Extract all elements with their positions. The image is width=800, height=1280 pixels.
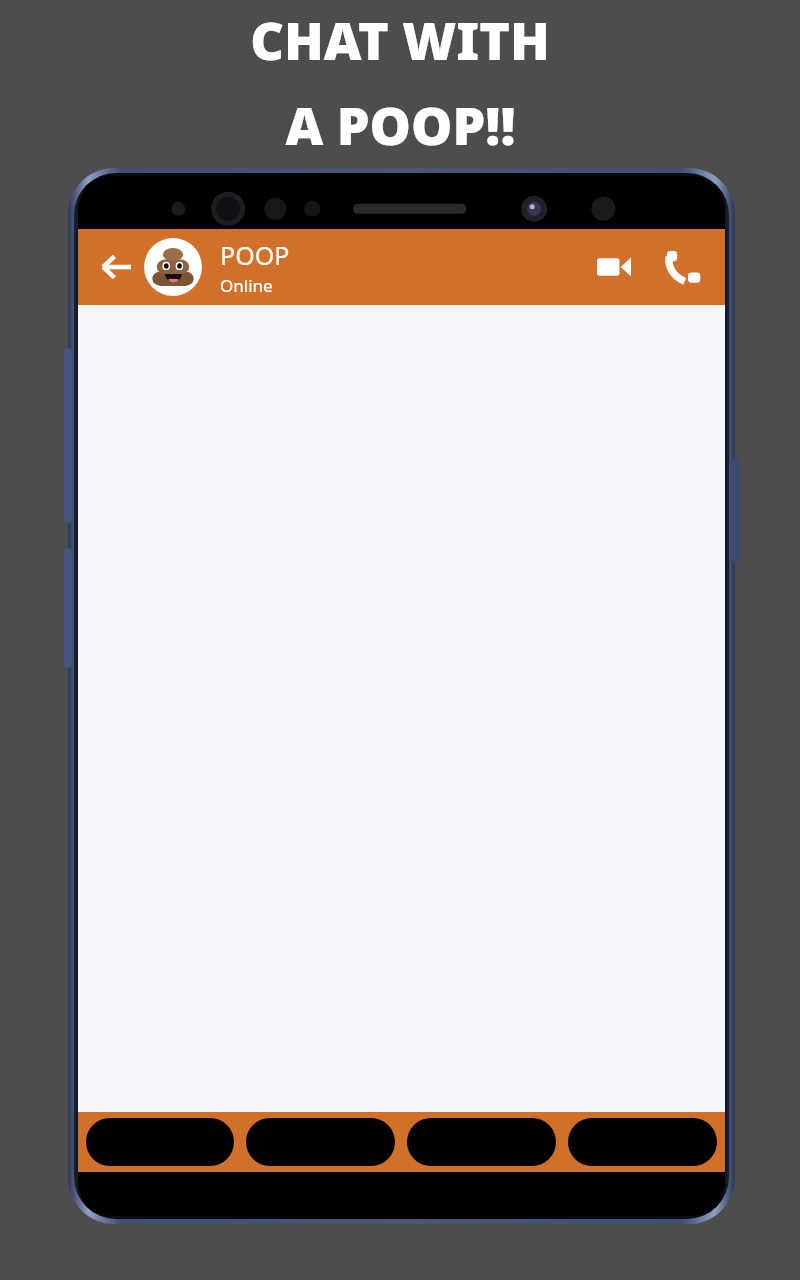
button[interactable]: Action 1 xyxy=(86,1118,234,1166)
staticText: CHAT WITH xyxy=(250,4,550,75)
button[interactable]: Action 4 xyxy=(568,1118,717,1166)
staticText: A POOP!! xyxy=(285,89,516,160)
button[interactable]: Action 3 xyxy=(407,1118,556,1166)
button[interactable]: Action 2 xyxy=(246,1118,395,1166)
staticText: Online xyxy=(220,274,273,297)
button[interactable]: Call xyxy=(657,240,711,294)
staticText: POOP xyxy=(220,238,290,272)
button[interactable]: Contact avatar xyxy=(144,238,202,296)
button[interactable]: Video call xyxy=(587,240,641,294)
button[interactable]: Back xyxy=(90,241,142,293)
